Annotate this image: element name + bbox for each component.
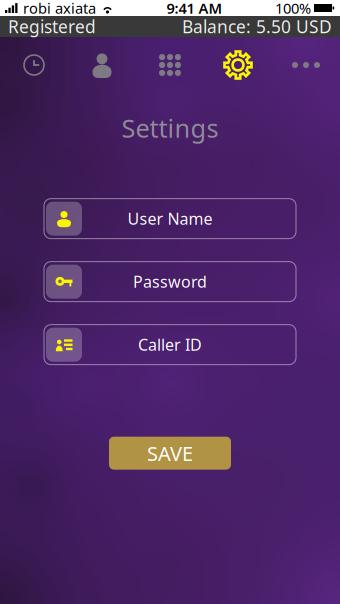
- staticText: Balance: 5.50 USD: [182, 15, 332, 38]
- button[interactable]: Caller ID: [44, 325, 296, 365]
- button[interactable]: Recents: [0, 37, 68, 93]
- staticText: 9:41 AM: [166, 0, 222, 18]
- staticText: 100%: [275, 0, 311, 18]
- button[interactable]: Contacts: [68, 37, 136, 93]
- staticText: Settings: [121, 111, 218, 145]
- button[interactable]: User Name: [44, 199, 296, 239]
- staticText: Password: [133, 271, 207, 292]
- staticText: User Name: [127, 208, 212, 229]
- staticText: Registered: [8, 15, 96, 38]
- button[interactable]: More: [272, 37, 340, 93]
- button[interactable]: SAVE: [109, 437, 231, 470]
- button[interactable]: Settings: [204, 37, 272, 93]
- staticText: robi axiata: [23, 0, 96, 18]
- button[interactable]: Keypad: [136, 37, 204, 93]
- staticText: Caller ID: [138, 334, 202, 355]
- button[interactable]: Password: [44, 262, 296, 302]
- staticText: SAVE: [147, 440, 193, 466]
